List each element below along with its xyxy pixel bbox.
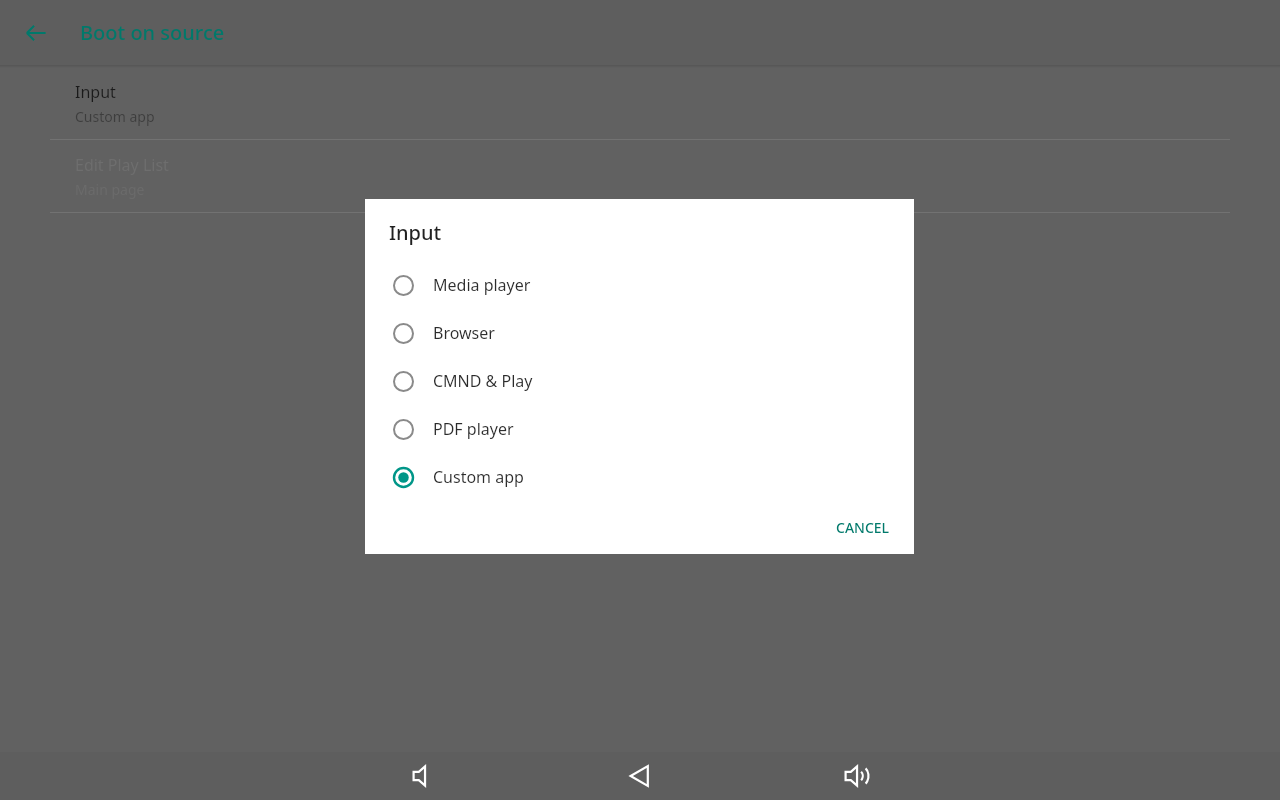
staticText: Custom app — [433, 466, 524, 488]
staticText: CANCEL — [836, 518, 890, 537]
button[interactable]: CANCEL — [828, 509, 898, 546]
staticText: Edit Play List — [75, 154, 169, 176]
staticText: Boot on source — [80, 19, 225, 46]
button[interactable]: Back — [612, 752, 668, 800]
button[interactable]: Volume down — [396, 752, 452, 800]
button[interactable]: Edit Play List — [0, 140, 1280, 212]
staticText: Input — [389, 219, 442, 246]
button[interactable]: PDF player — [365, 405, 914, 453]
staticText: CMND & Play — [433, 370, 533, 392]
button[interactable]: Media player — [365, 261, 914, 309]
staticText: Custom app — [75, 107, 155, 126]
button[interactable]: Back — [16, 13, 56, 53]
staticText: Input — [75, 81, 116, 103]
staticText: Media player — [433, 274, 531, 296]
button[interactable]: Browser — [365, 309, 914, 357]
staticText: Browser — [433, 322, 495, 344]
button[interactable]: Volume up — [828, 752, 884, 800]
button[interactable]: Custom app — [365, 453, 914, 501]
button[interactable]: CMND & Play — [365, 357, 914, 405]
staticText: PDF player — [433, 418, 514, 440]
